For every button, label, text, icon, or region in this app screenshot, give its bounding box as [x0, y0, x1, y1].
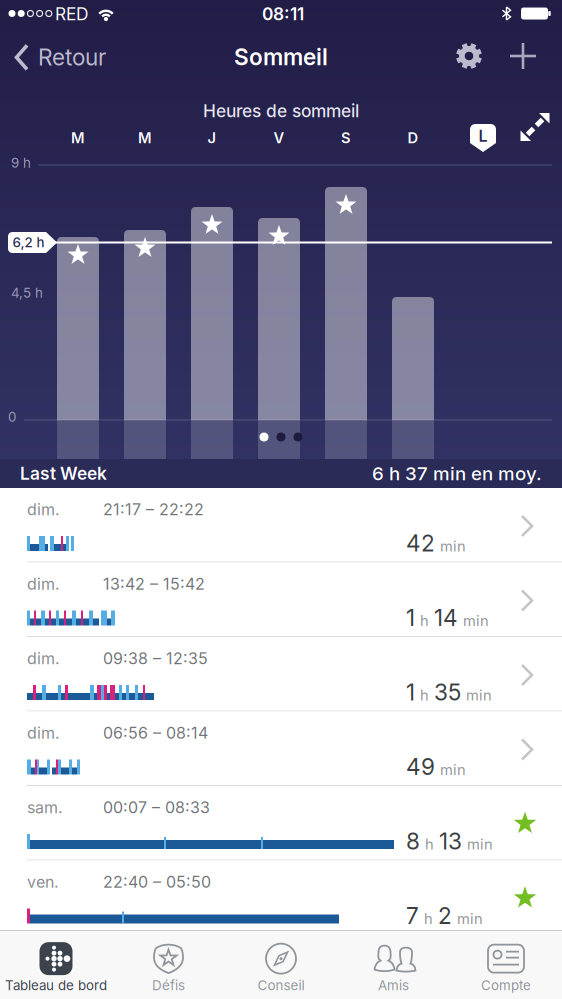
button[interactable]: Lundi [470, 124, 496, 152]
staticText: Conseil [257, 978, 304, 993]
staticText: 08:11 [262, 4, 304, 24]
staticText: 6,2 h [12, 235, 44, 250]
staticText: Sommeil [234, 44, 328, 70]
button[interactable]: dim. [0, 488, 562, 562]
button[interactable]: ven. [0, 860, 562, 935]
staticText: h [425, 835, 434, 853]
staticText: sam. [27, 798, 63, 817]
staticText: 9 h [11, 155, 31, 171]
button[interactable]: Retour [14, 44, 106, 71]
staticText: min [440, 537, 466, 555]
staticText: Compte [481, 978, 531, 993]
button[interactable]: Tableau de bord [5, 942, 107, 993]
staticText: dim. [27, 723, 60, 742]
staticText: D [407, 129, 418, 147]
staticText: Heures de sommeil [203, 101, 359, 121]
staticText: S [341, 129, 351, 147]
staticText: M [138, 129, 152, 147]
staticText: 21:17 – 22:22 [103, 500, 204, 519]
staticText: RED [55, 4, 89, 24]
staticText: dim. [27, 574, 60, 593]
staticText: 0 [8, 409, 16, 425]
staticText: h [420, 686, 429, 704]
button[interactable]: Compte [481, 942, 531, 993]
staticText: V [273, 129, 284, 147]
staticText: Last Week [20, 463, 107, 484]
staticText: min [467, 835, 493, 853]
staticText: min [440, 761, 466, 778]
button[interactable]: dim. [0, 711, 562, 786]
staticText: Tableau de bord [5, 978, 107, 993]
staticText: min [457, 910, 483, 927]
staticText: min [466, 686, 492, 704]
staticText: 6 h 37 min en moy. [372, 462, 542, 484]
staticText: 06:56 – 08:14 [103, 723, 208, 742]
staticText: M [71, 129, 85, 147]
staticText: Défis [152, 978, 185, 993]
staticText: 14 [434, 604, 458, 631]
staticText: dim. [27, 649, 60, 668]
staticText: min [463, 612, 489, 629]
button[interactable]: Ajouter [510, 43, 536, 69]
staticText: 1 [406, 679, 415, 706]
staticText: h [424, 910, 433, 927]
staticText: 8 [406, 828, 420, 855]
staticText: Retour [38, 44, 106, 71]
button[interactable]: dim. [0, 562, 562, 637]
button[interactable]: Amis [376, 942, 410, 993]
button[interactable]: Réglages [454, 41, 484, 71]
staticText: 2 [438, 902, 452, 929]
staticText: 13 [439, 828, 462, 855]
staticText: 42 [406, 530, 435, 557]
staticText: dim. [27, 500, 60, 519]
staticText: 00:07 – 08:33 [103, 798, 210, 817]
button[interactable]: dim. [0, 637, 562, 711]
staticText: 35 [434, 679, 461, 706]
staticText: h [420, 612, 429, 629]
staticText: J [207, 129, 216, 147]
staticText: Amis [378, 978, 409, 993]
staticText: 22:40 – 05:50 [103, 872, 211, 891]
button[interactable]: Conseil [257, 942, 304, 993]
staticText: 13:42 – 15:42 [103, 574, 205, 593]
button[interactable]: sam. [0, 786, 562, 860]
staticText: 09:38 – 12:35 [103, 649, 208, 668]
staticText: 4,5 h [11, 285, 43, 301]
staticText: L [478, 127, 487, 145]
button[interactable]: Agrandir [520, 112, 549, 142]
staticText: 49 [406, 753, 435, 780]
staticText: 7 [406, 902, 419, 929]
staticText: 1 [406, 604, 415, 631]
button[interactable]: Défis [151, 942, 185, 993]
staticText: ven. [27, 872, 59, 891]
